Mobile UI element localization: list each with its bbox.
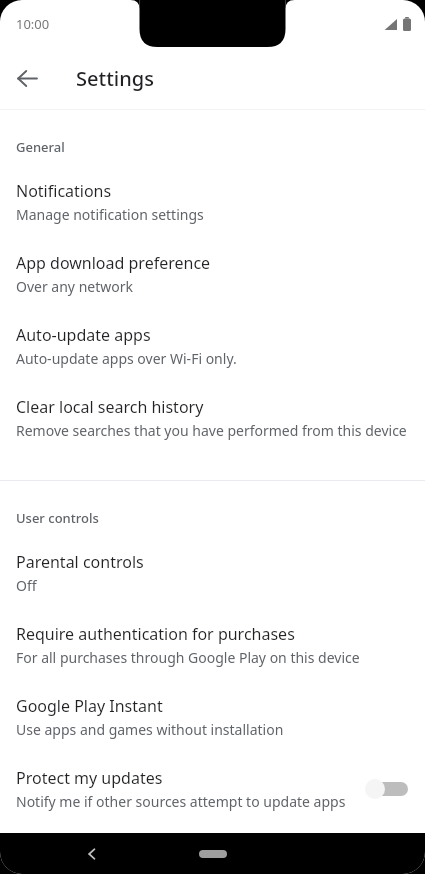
button[interactable]: Require authentication for purchases <box>0 609 425 681</box>
staticText: Settings <box>76 65 154 92</box>
staticText: Google Play Instant <box>16 695 163 717</box>
button[interactable]: Auto-update apps <box>0 310 425 382</box>
staticText: Off <box>16 576 37 595</box>
button[interactable]: Home <box>185 842 241 866</box>
button[interactable]: Back <box>74 836 110 872</box>
staticText: Protect my updates <box>16 767 163 789</box>
button[interactable]: Back <box>7 58 47 98</box>
staticText: For all purchases through Google Play on… <box>16 648 360 667</box>
button[interactable]: Notifications <box>0 166 425 238</box>
staticText: Notifications <box>16 180 112 202</box>
staticText: General <box>16 138 65 156</box>
staticText: 10:00 <box>16 15 50 33</box>
staticText: Parental controls <box>16 551 144 573</box>
staticText: Remove searches that you have performed … <box>16 421 407 440</box>
staticText: Auto-update apps over Wi-Fi only. <box>16 349 237 368</box>
staticText: Auto-update apps <box>16 324 151 346</box>
staticText: Use apps and games without installation <box>16 720 284 739</box>
staticText: User controls <box>16 509 99 527</box>
staticText: Over any network <box>16 277 133 296</box>
button[interactable]: Clear local search history <box>0 382 425 454</box>
button[interactable]: App download preference <box>0 238 425 310</box>
staticText: Require authentication for purchases <box>16 623 295 645</box>
button[interactable]: Protect my updates <box>0 753 425 825</box>
button[interactable]: Protect my updates toggle <box>365 775 409 803</box>
staticText: App download preference <box>16 252 211 274</box>
button[interactable]: Google Play Instant <box>0 681 425 753</box>
staticText: Clear local search history <box>16 396 204 418</box>
button[interactable]: Parental controls <box>0 537 425 609</box>
staticText: Notify me if other sources attempt to up… <box>16 792 346 811</box>
staticText: Manage notification settings <box>16 205 204 224</box>
